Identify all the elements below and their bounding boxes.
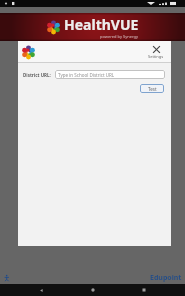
button[interactable]: Close Settings <box>146 44 166 60</box>
button[interactable]: Back <box>35 284 47 296</box>
staticText: HealthVUE <box>64 15 139 34</box>
staticText: Settings <box>148 54 164 59</box>
button[interactable]: Edupoint <box>150 273 182 283</box>
button[interactable]: Type in School District URL <box>55 70 165 79</box>
staticText: powered by Synergy <box>100 34 139 39</box>
staticText: Test <box>148 86 157 92</box>
button[interactable]: Test <box>140 84 164 93</box>
button[interactable]: Recent apps <box>138 284 150 296</box>
button[interactable]: Home <box>87 284 99 296</box>
button[interactable]: Accessibility <box>3 274 11 282</box>
staticText: Type in School District URL <box>58 72 115 78</box>
staticText: Edupoint <box>150 273 182 283</box>
staticText: District URL: <box>23 72 51 78</box>
